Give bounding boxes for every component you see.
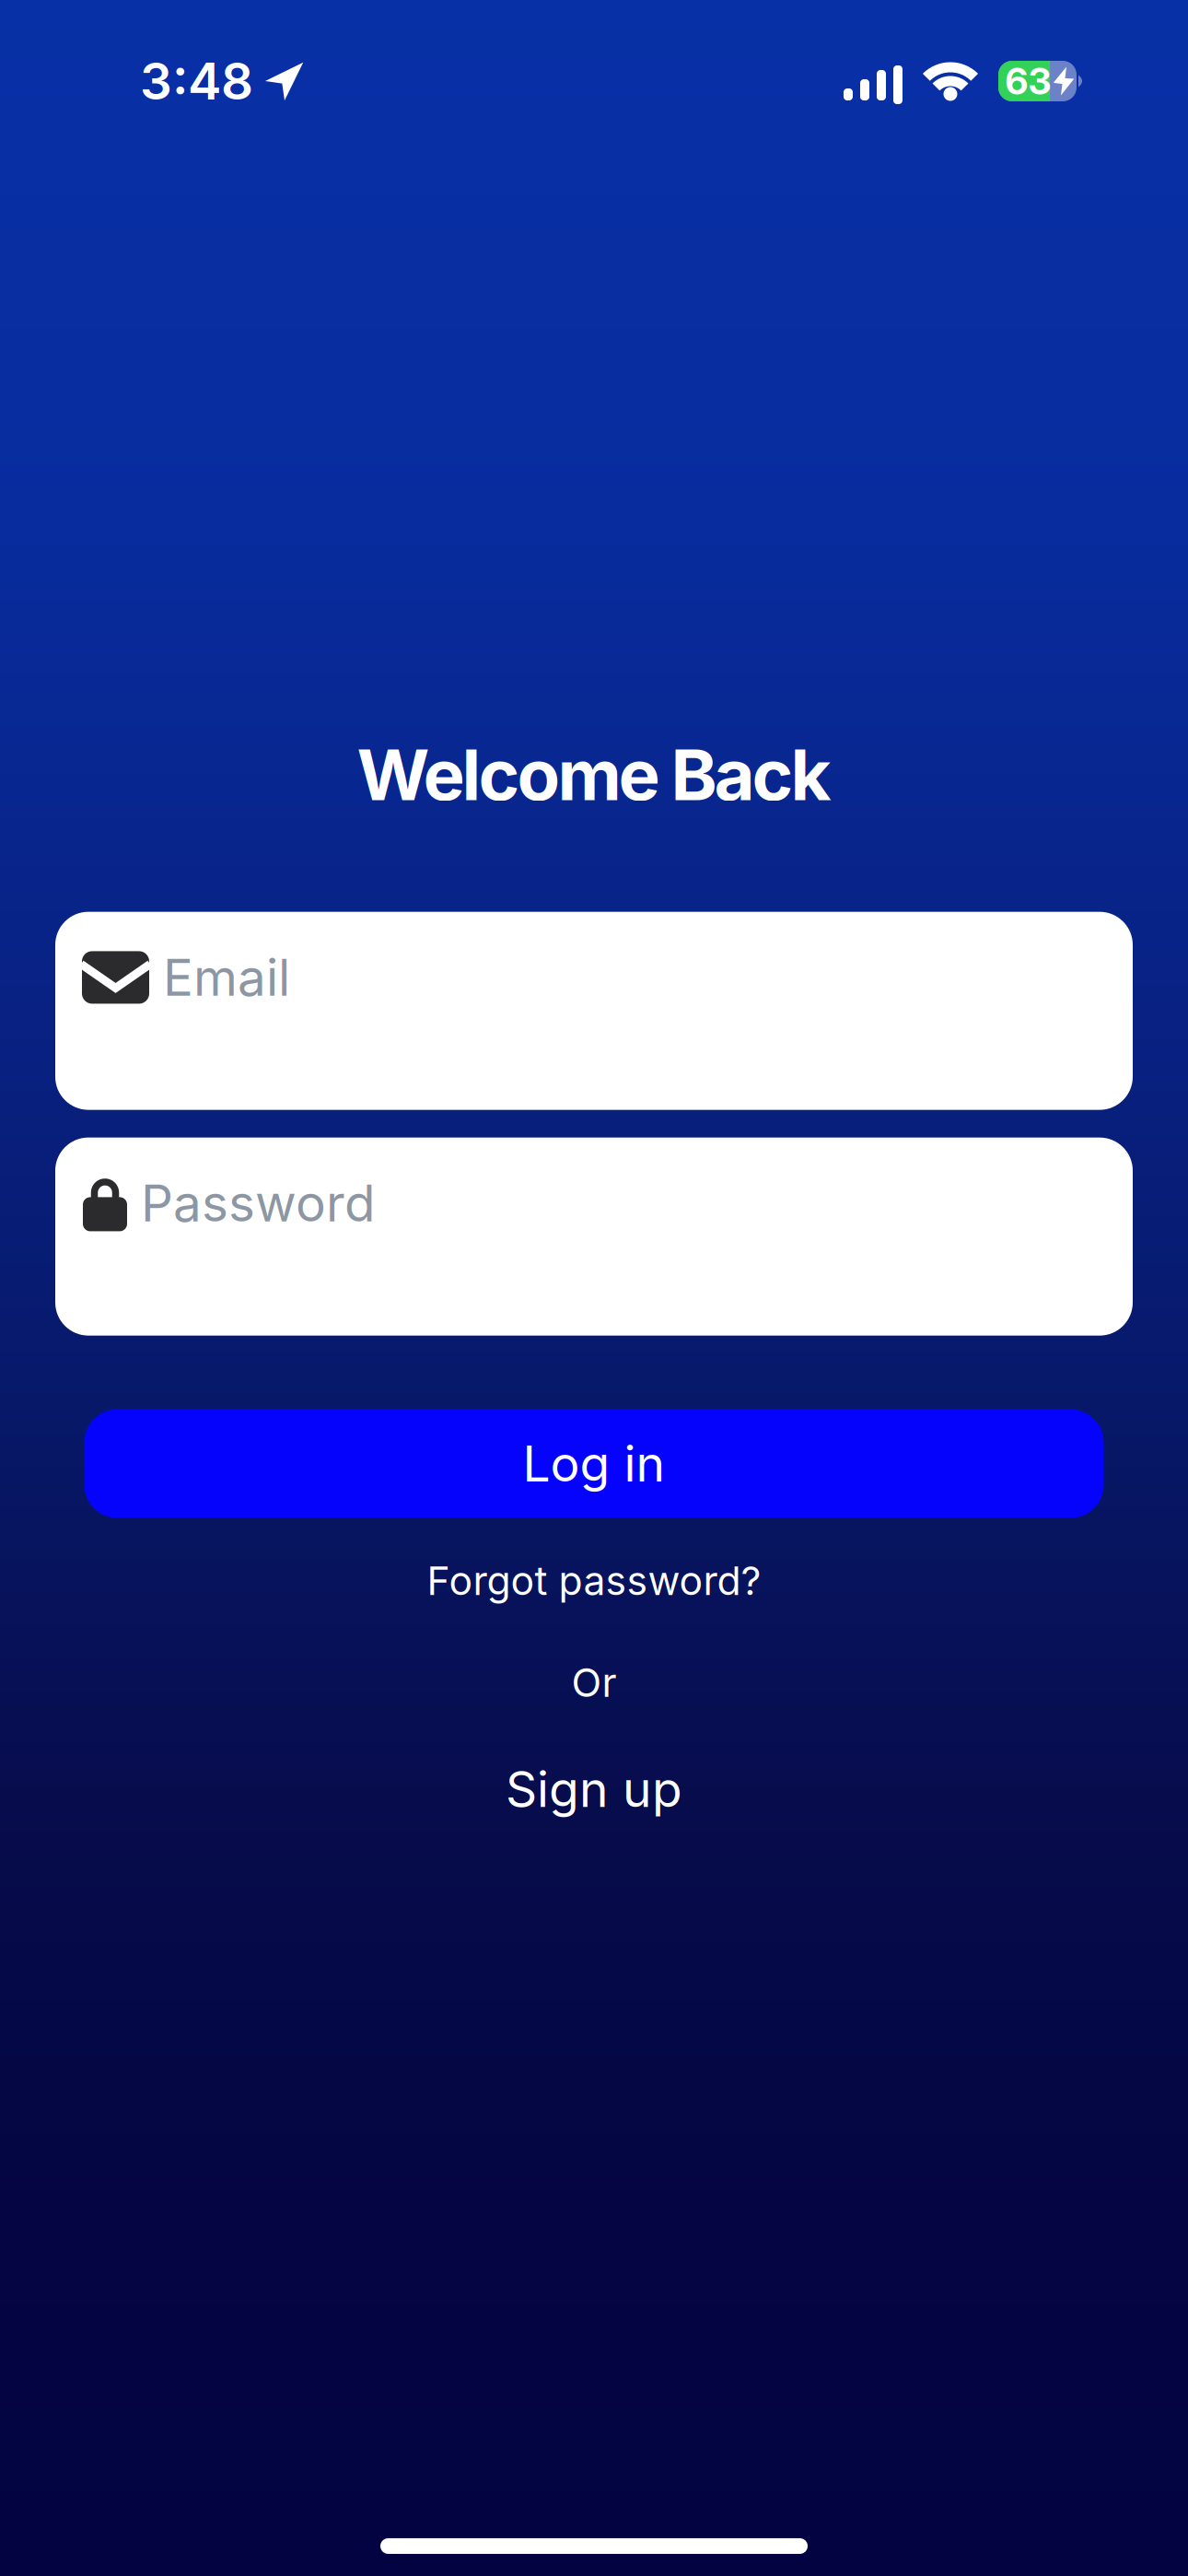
staticText: Sign up <box>506 1760 682 1818</box>
staticText: Email <box>163 948 290 1007</box>
button[interactable]: Email <box>55 912 1133 1110</box>
staticText: Log in <box>523 1435 665 1493</box>
button[interactable]: Log in <box>84 1409 1104 1518</box>
staticText: Forgot password? <box>427 1558 761 1604</box>
button[interactable]: Password <box>55 1138 1133 1336</box>
button[interactable]: Sign up <box>506 1760 682 1818</box>
staticText: Password <box>141 1173 375 1233</box>
button[interactable]: Forgot password? <box>427 1558 761 1604</box>
staticText: Welcome Back <box>357 733 831 816</box>
staticText: 3:48 <box>140 51 253 111</box>
staticText: Or <box>571 1659 617 1706</box>
staticText: 63 <box>1005 59 1051 103</box>
